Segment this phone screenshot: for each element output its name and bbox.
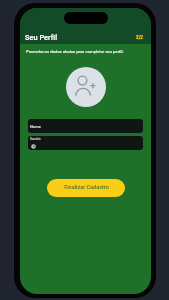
staticText: Seu Perfil (25, 33, 58, 42)
button[interactable]: Adicionar foto de perfil (66, 67, 106, 107)
staticText: Nome (30, 124, 41, 129)
button[interactable]: Finalizar Cadastro (47, 179, 125, 197)
button[interactable]: Nome (28, 119, 143, 133)
staticText: 2/2 (136, 35, 143, 40)
staticText: Usuário (30, 137, 41, 141)
staticText: Finalizar Cadastro (64, 184, 109, 190)
button[interactable]: Usuário (28, 136, 143, 150)
staticText: Preencha os dados abaixo para completar … (26, 49, 124, 54)
